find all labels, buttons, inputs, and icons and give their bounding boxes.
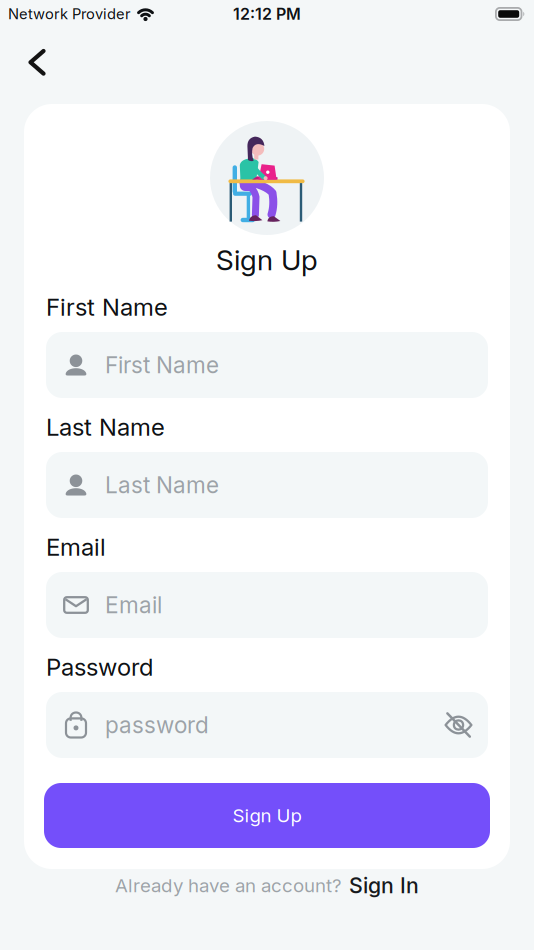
staticText: Email — [105, 592, 162, 618]
staticText: First Name — [46, 293, 168, 321]
button[interactable]: First Name — [46, 332, 488, 398]
staticText: Sign Up — [216, 243, 318, 276]
button[interactable]: Email — [46, 572, 488, 638]
button[interactable]: Last Name — [46, 452, 488, 518]
button[interactable]: Sign Up — [44, 783, 490, 848]
button[interactable] — [15, 40, 59, 84]
staticText: 12:12 PM — [233, 5, 301, 23]
staticText: Already have an account? — [115, 875, 342, 897]
button[interactable]: Sign In — [349, 873, 419, 898]
staticText: Network Provider — [8, 5, 131, 23]
staticText: Last Name — [46, 413, 165, 441]
button[interactable] — [444, 712, 473, 738]
staticText: Sign Up — [232, 804, 301, 826]
staticText: password — [105, 712, 209, 738]
button[interactable]: password — [46, 692, 488, 758]
staticText: Password — [46, 653, 153, 681]
staticText: Sign In — [349, 873, 419, 898]
staticText: Email — [46, 533, 106, 561]
staticText: First Name — [105, 352, 219, 378]
staticText: Last Name — [105, 472, 219, 498]
